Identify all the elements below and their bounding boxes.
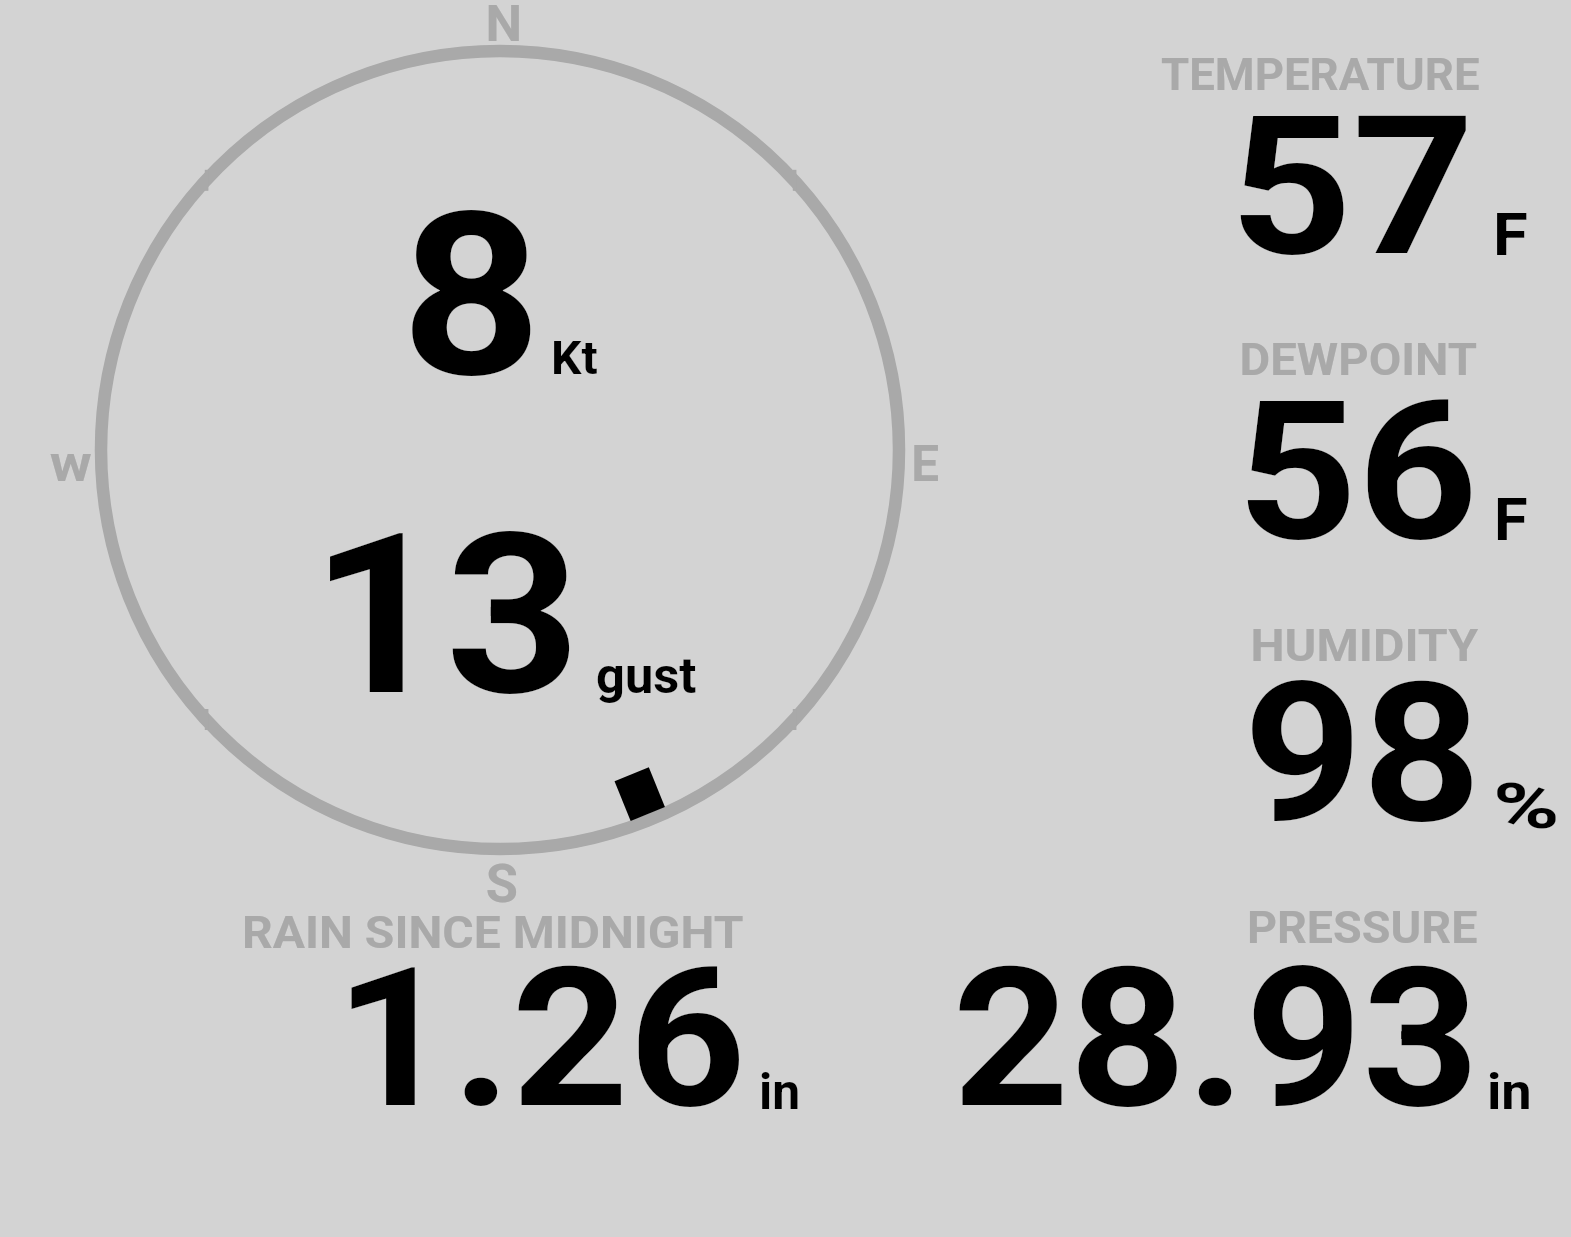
staticText: DEWPOINT bbox=[1239, 334, 1478, 385]
staticText: 8 bbox=[401, 164, 542, 429]
staticText: 1.26 bbox=[335, 925, 747, 1152]
staticText: E bbox=[911, 434, 940, 493]
staticText: 56 bbox=[1237, 358, 1479, 585]
staticText: w bbox=[50, 434, 92, 494]
staticText: % bbox=[1493, 770, 1561, 843]
staticText: F bbox=[1493, 200, 1528, 270]
staticText: RAIN SINCE MIDNIGHT bbox=[242, 907, 744, 958]
staticText: N bbox=[485, 0, 523, 53]
staticText: PRESSURE bbox=[1247, 902, 1478, 953]
staticText: in bbox=[759, 1063, 800, 1121]
staticText: F bbox=[1494, 485, 1528, 555]
staticText: 57 bbox=[1230, 73, 1476, 300]
staticText: Kt bbox=[551, 331, 598, 385]
staticText: TEMPERATURE bbox=[1161, 49, 1480, 100]
staticText: 28.93 bbox=[952, 925, 1480, 1152]
staticText: in bbox=[1487, 1063, 1532, 1121]
staticText: HUMIDITY bbox=[1250, 620, 1479, 671]
staticText: S bbox=[486, 851, 518, 915]
staticText: gust bbox=[596, 647, 697, 705]
staticText: 13 bbox=[311, 485, 581, 747]
staticText: 98 bbox=[1243, 640, 1482, 867]
